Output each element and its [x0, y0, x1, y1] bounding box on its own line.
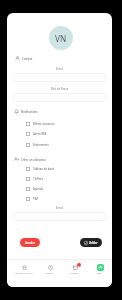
- button[interactable]: [12, 73, 107, 82]
- button[interactable]: Tableau de bord: [26, 165, 112, 172]
- staticText: Agenda: [70, 272, 79, 275]
- button[interactable]: [12, 93, 107, 102]
- button[interactable]: [12, 212, 107, 221]
- button[interactable]: Valider: [80, 238, 102, 247]
- button[interactable]: Compte: [15, 56, 33, 61]
- staticText: Evénements: [33, 143, 49, 147]
- button[interactable]: PIM: [87, 263, 112, 275]
- button[interactable]: Agenda: [62, 263, 87, 275]
- button[interactable]: Tableau de bord: [11, 263, 37, 275]
- staticText: Alerte RFA: [33, 132, 47, 136]
- button[interactable]: Annuler: [20, 238, 40, 247]
- button[interactable]: PIM: [26, 195, 112, 202]
- staticText: Email: [56, 67, 64, 71]
- button[interactable]: Mêmes business: [26, 120, 112, 127]
- staticText: Mêmes business: [33, 122, 55, 126]
- staticText: Chiffres: [45, 272, 54, 275]
- button[interactable]: Chiffres: [37, 263, 62, 275]
- staticText: VN: [55, 33, 67, 44]
- staticText: Email: [56, 206, 64, 210]
- staticText: 1: [78, 264, 80, 267]
- button[interactable]: Agenda: [26, 185, 112, 192]
- button[interactable]: Chiffres: [26, 175, 112, 182]
- staticText: PIM: [33, 197, 39, 201]
- button[interactable]: Alerte RFA: [26, 130, 112, 137]
- button[interactable]: Evénements: [26, 141, 112, 148]
- button[interactable]: Créer un utilisateur: [14, 157, 47, 162]
- staticText: Créer un utilisateur: [21, 158, 47, 162]
- staticText: Agenda: [33, 187, 43, 191]
- staticText: Compte: [22, 57, 33, 61]
- staticText: Tableau de bord: [15, 272, 33, 275]
- staticText: Notifications: [21, 110, 38, 114]
- staticText: Tableau de bord: [33, 167, 54, 171]
- staticText: PIM: [97, 272, 102, 275]
- staticText: Mot de Passe: [51, 87, 69, 91]
- button[interactable]: Notifications: [14, 109, 38, 114]
- staticText: Chiffres: [33, 177, 43, 181]
- staticText: Annuler: [25, 241, 35, 245]
- staticText: Valider: [89, 241, 98, 245]
